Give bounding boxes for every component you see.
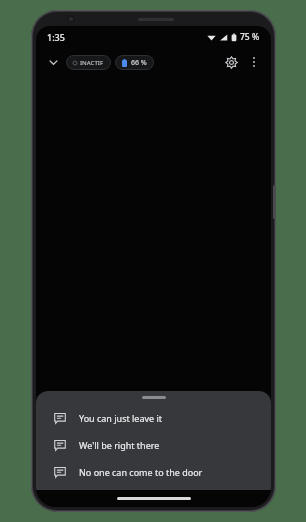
- button[interactable]: INACTIF: [66, 55, 111, 70]
- button[interactable]: More options: [244, 52, 264, 72]
- staticText: You can just leave it: [79, 412, 163, 424]
- button[interactable]: You can just leave it: [36, 404, 271, 431]
- button[interactable]: 66 %: [115, 55, 154, 70]
- staticText: We'll be right there: [79, 439, 160, 451]
- staticText: No one can come to the door: [79, 466, 203, 478]
- staticText: 1:35: [47, 31, 65, 43]
- staticText: 66 %: [131, 58, 147, 68]
- button[interactable]: Collapse: [43, 52, 63, 72]
- staticText: 75 %: [240, 31, 260, 43]
- staticText: INACTIF: [80, 59, 104, 67]
- button[interactable]: We'll be right there: [36, 431, 271, 458]
- button[interactable]: No one can come to the door: [36, 458, 271, 485]
- button[interactable]: Settings: [220, 51, 242, 73]
